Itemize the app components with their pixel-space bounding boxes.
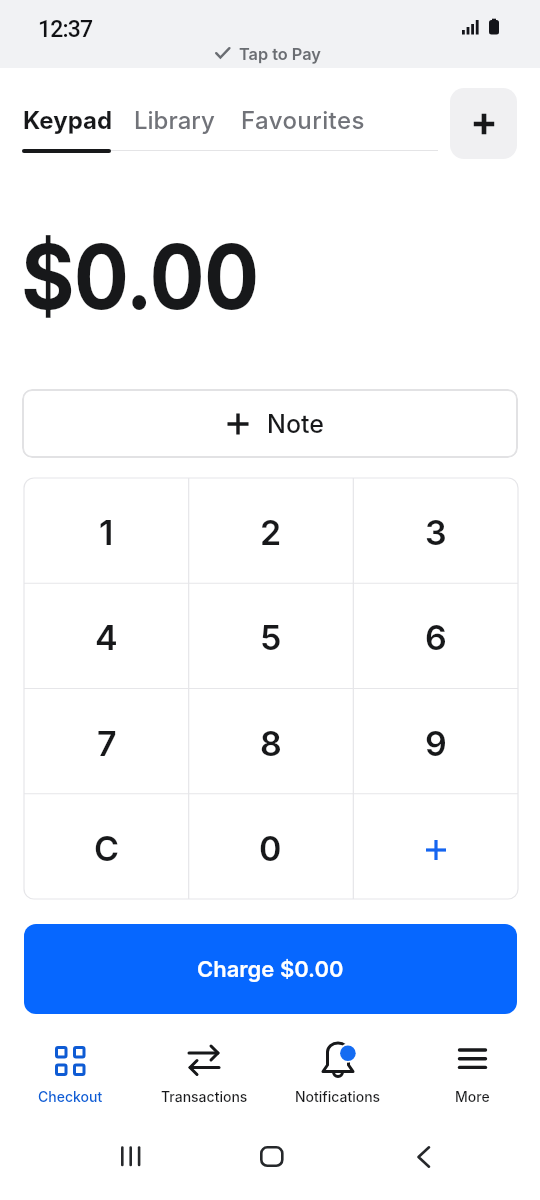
button[interactable]: Charge $0.00	[24, 924, 517, 1014]
staticText: 12:37	[38, 16, 93, 43]
staticText: 0	[259, 828, 282, 869]
button[interactable]: 4	[24, 583, 189, 688]
button[interactable]: 0	[188, 794, 353, 899]
staticText: 5	[260, 617, 282, 658]
button[interactable]	[134, 100, 220, 140]
button[interactable]	[353, 794, 518, 899]
button[interactable]	[95, 1135, 165, 1180]
staticText: 8	[260, 723, 282, 764]
button[interactable]	[23, 100, 113, 140]
button[interactable]	[450, 88, 517, 159]
button[interactable]: 7	[24, 689, 189, 794]
staticText: Charge $0.00	[197, 956, 344, 983]
staticText: Favourites	[241, 106, 365, 135]
button[interactable]	[290, 1038, 386, 1106]
staticText: C	[94, 828, 120, 869]
button[interactable]	[395, 1135, 455, 1180]
staticText: More	[455, 1088, 490, 1105]
staticText: Keypad	[23, 106, 113, 135]
staticText: 2	[260, 512, 282, 553]
staticText: Transactions	[161, 1088, 248, 1105]
button[interactable]: 8	[188, 689, 353, 794]
staticText: $0.00	[21, 223, 258, 331]
staticText: 3	[425, 512, 447, 553]
button[interactable]: 2	[188, 478, 353, 583]
staticText: 9	[425, 723, 447, 764]
button[interactable]	[424, 1038, 520, 1106]
button[interactable]	[156, 1038, 252, 1106]
button[interactable]: 1	[24, 478, 189, 583]
button[interactable]: Note	[22, 389, 518, 458]
staticText: 6	[425, 617, 447, 658]
staticText: Note	[267, 409, 324, 439]
button[interactable]: C	[24, 794, 189, 899]
staticText: Tap to Pay	[239, 44, 321, 64]
button[interactable]: 9	[353, 689, 518, 794]
staticText: Notifications	[295, 1088, 381, 1105]
staticText: 1	[99, 512, 114, 553]
button[interactable]: 5	[188, 583, 353, 688]
button[interactable]: 6	[353, 583, 518, 688]
staticText: Library	[134, 106, 215, 135]
button[interactable]: 3	[353, 478, 518, 583]
button[interactable]	[240, 1135, 303, 1180]
button[interactable]	[241, 100, 366, 140]
staticText: 7	[97, 723, 117, 764]
staticText: Checkout	[38, 1088, 103, 1105]
staticText: 4	[95, 617, 118, 658]
button[interactable]	[22, 1038, 118, 1106]
